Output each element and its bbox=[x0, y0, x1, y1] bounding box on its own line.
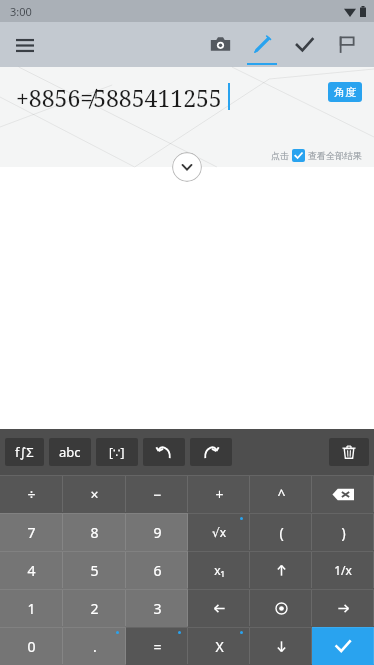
button[interactable]: Up bbox=[250, 551, 312, 589]
staticText: ^ bbox=[277, 485, 286, 504]
staticText: 角度 bbox=[334, 85, 356, 99]
button[interactable]: 0 bbox=[0, 627, 63, 665]
staticText: ( bbox=[279, 523, 284, 542]
button[interactable]: x₁ bbox=[188, 551, 250, 589]
staticText: [∵] bbox=[109, 444, 125, 460]
staticText: × bbox=[90, 485, 99, 504]
button[interactable]: Flag bbox=[330, 22, 362, 67]
button[interactable]: − bbox=[126, 475, 188, 513]
staticText: 6 bbox=[153, 561, 162, 580]
button[interactable]: [∵] bbox=[96, 438, 138, 466]
button[interactable]: Right bbox=[312, 589, 374, 627]
button[interactable]: Backspace bbox=[312, 475, 374, 513]
button[interactable]: ( bbox=[250, 513, 312, 551]
staticText: − bbox=[153, 485, 162, 504]
button[interactable]: abc bbox=[49, 438, 91, 466]
button[interactable]: + bbox=[188, 475, 250, 513]
staticText: ÷ bbox=[27, 485, 36, 504]
staticText: 5 bbox=[90, 561, 99, 580]
staticText: √x bbox=[212, 524, 226, 540]
button[interactable]: 1 bbox=[0, 589, 63, 627]
staticText: +8856≠5885411255 bbox=[16, 82, 222, 113]
staticText: 8 bbox=[90, 523, 99, 542]
staticText: + bbox=[215, 485, 224, 504]
button[interactable]: Down bbox=[250, 627, 312, 665]
button[interactable]: Cursor bbox=[250, 589, 312, 627]
staticText: 1/x bbox=[334, 562, 352, 578]
button[interactable]: 5 bbox=[63, 551, 126, 589]
button[interactable]: f∫Σ bbox=[5, 438, 44, 466]
button[interactable]: 6 bbox=[126, 551, 188, 589]
button[interactable]: √x bbox=[188, 513, 250, 551]
staticText: 0 bbox=[27, 637, 36, 656]
staticText: 3 bbox=[153, 599, 162, 618]
button[interactable]: X bbox=[188, 627, 250, 665]
button[interactable]: Menu bbox=[8, 28, 42, 62]
staticText: f∫Σ bbox=[15, 443, 34, 461]
button[interactable]: Redo bbox=[190, 438, 232, 466]
button[interactable]: 7 bbox=[0, 513, 63, 551]
button[interactable]: Expand results bbox=[172, 152, 202, 182]
button[interactable]: 9 bbox=[126, 513, 188, 551]
button[interactable]: ^ bbox=[250, 475, 312, 513]
button[interactable]: 角度 bbox=[328, 82, 362, 102]
button[interactable]: Confirm bbox=[288, 22, 320, 67]
staticText: = bbox=[153, 637, 162, 656]
staticText: ) bbox=[341, 523, 346, 542]
button[interactable]: Delete all bbox=[329, 438, 369, 466]
staticText: 3:00 bbox=[10, 4, 32, 19]
button[interactable]: Undo bbox=[143, 438, 185, 466]
staticText: X bbox=[215, 637, 224, 656]
staticText: abc bbox=[59, 443, 81, 461]
staticText: x₁ bbox=[214, 562, 225, 578]
button[interactable]: 1/x bbox=[312, 551, 374, 589]
button[interactable]: Left bbox=[188, 589, 250, 627]
button[interactable]: ) bbox=[312, 513, 374, 551]
button[interactable]: = bbox=[126, 627, 188, 665]
button[interactable]: 8 bbox=[63, 513, 126, 551]
staticText: 7 bbox=[27, 523, 36, 542]
button[interactable]: . bbox=[63, 627, 126, 665]
staticText: 9 bbox=[153, 523, 162, 542]
button[interactable]: Draw bbox=[246, 22, 278, 67]
staticText: 2 bbox=[90, 599, 99, 618]
staticText: 点击 bbox=[271, 150, 289, 161]
button[interactable]: × bbox=[63, 475, 126, 513]
button[interactable]: ÷ bbox=[0, 475, 63, 513]
staticText: 1 bbox=[27, 599, 36, 618]
staticText: 4 bbox=[27, 561, 36, 580]
button[interactable]: 2 bbox=[63, 589, 126, 627]
button[interactable]: 3 bbox=[126, 589, 188, 627]
button[interactable]: Camera bbox=[204, 22, 236, 67]
button[interactable]: 4 bbox=[0, 551, 63, 589]
button[interactable]: Evaluate bbox=[312, 627, 374, 665]
staticText: . bbox=[93, 637, 97, 656]
staticText: 查看全部结果 bbox=[308, 150, 362, 161]
